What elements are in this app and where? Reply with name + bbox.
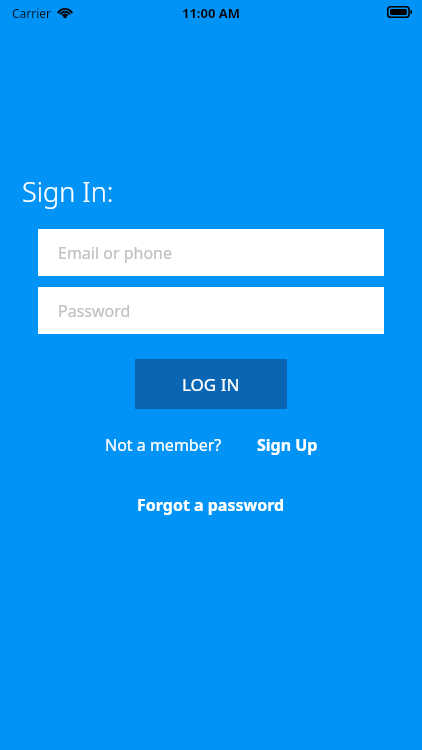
- staticText: Password: [58, 300, 131, 322]
- staticText: Sign Up: [257, 434, 318, 456]
- staticText: Forgot a password: [137, 494, 285, 516]
- button[interactable]: Password: [38, 287, 384, 334]
- staticText: Not a member?: [105, 434, 222, 456]
- button[interactable]: Sign Up: [257, 434, 318, 456]
- button[interactable]: Not a member?: [105, 434, 222, 456]
- button[interactable]: LOG IN: [135, 359, 287, 409]
- staticText: Email or phone: [58, 242, 173, 264]
- button[interactable]: Forgot a password: [137, 494, 285, 516]
- staticText: 11:00 AM: [182, 4, 241, 22]
- staticText: LOG IN: [182, 373, 240, 396]
- button[interactable]: Email or phone: [38, 229, 384, 276]
- staticText: Sign In:: [22, 173, 114, 210]
- staticText: Carrier: [12, 5, 52, 21]
